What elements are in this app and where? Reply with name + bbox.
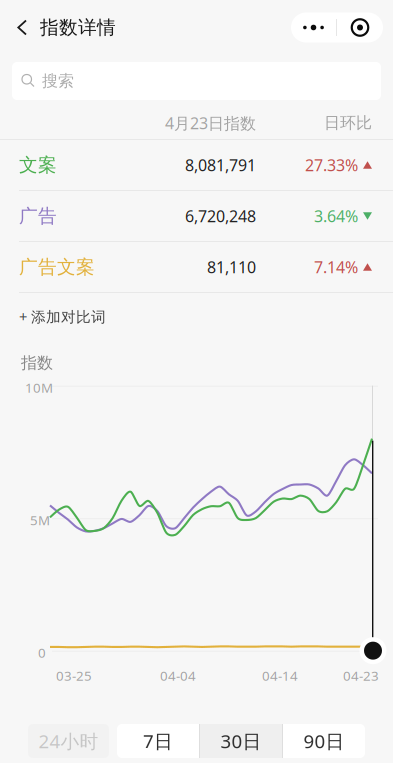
staticText: 10M [25,379,53,396]
button[interactable]: 7日 [117,724,199,758]
button[interactable]: 24小时 [28,724,109,758]
staticText: 指数 [21,353,53,373]
staticText: 90日 [303,729,344,753]
button[interactable]: + 添加对比词 [0,293,106,340]
staticText: 3.64% [314,205,358,227]
staticText: 04-23 [343,667,379,684]
button[interactable]: 搜索 [12,62,381,100]
button[interactable]: 30日 [200,724,282,758]
button[interactable]: More [291,12,336,42]
staticText: 4月23日指数 [165,112,256,134]
staticText: 7.14% [314,256,358,278]
staticText: 04-14 [262,667,298,684]
staticText: 6,720,248 [185,205,256,227]
staticText: 日环比 [324,113,372,133]
staticText: 27.33% [305,154,358,176]
staticText: 24小时 [38,729,98,753]
staticText: 广告文案 [19,255,95,278]
staticText: 81,110 [207,256,256,278]
staticText: 0 [38,644,46,661]
button[interactable]: 广告 [0,191,393,241]
staticText: 搜索 [42,71,74,91]
staticText: + 添加对比词 [19,307,106,326]
button[interactable]: Back [0,5,44,49]
staticText: 5M [30,511,50,529]
staticText: 03-25 [56,667,92,684]
staticText: 指数详情 [40,16,116,39]
button[interactable]: 90日 [283,724,365,758]
button[interactable]: 文案 [0,140,393,190]
button[interactable]: Close [337,12,383,42]
staticText: 04-04 [160,667,196,684]
button[interactable]: 广告文案 [0,242,393,292]
staticText: 文案 [19,153,57,176]
staticText: 7日 [143,729,173,753]
staticText: 30日 [220,729,261,753]
staticText: 广告 [19,204,57,227]
staticText: 8,081,791 [185,154,256,176]
